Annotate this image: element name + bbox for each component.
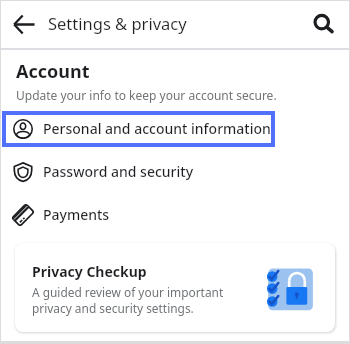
- staticText: Payments: [43, 205, 110, 224]
- button[interactable]: Back: [4, 4, 44, 44]
- staticText: Personal and account information: [43, 119, 271, 138]
- button[interactable]: Payments: [1, 193, 349, 236]
- staticText: Settings & privacy: [48, 12, 187, 34]
- button[interactable]: Search: [304, 4, 342, 42]
- staticText: Account: [16, 59, 90, 84]
- staticText: Password and security: [43, 162, 194, 181]
- staticText: A guided review of your important privac…: [32, 284, 224, 317]
- staticText: Update your info to keep your account se…: [16, 87, 277, 103]
- staticText: Privacy Checkup: [32, 262, 147, 281]
- button[interactable]: Privacy Checkup: [15, 243, 335, 332]
- button[interactable]: Password and security: [1, 150, 349, 193]
- button[interactable]: Personal and account information: [1, 107, 349, 150]
